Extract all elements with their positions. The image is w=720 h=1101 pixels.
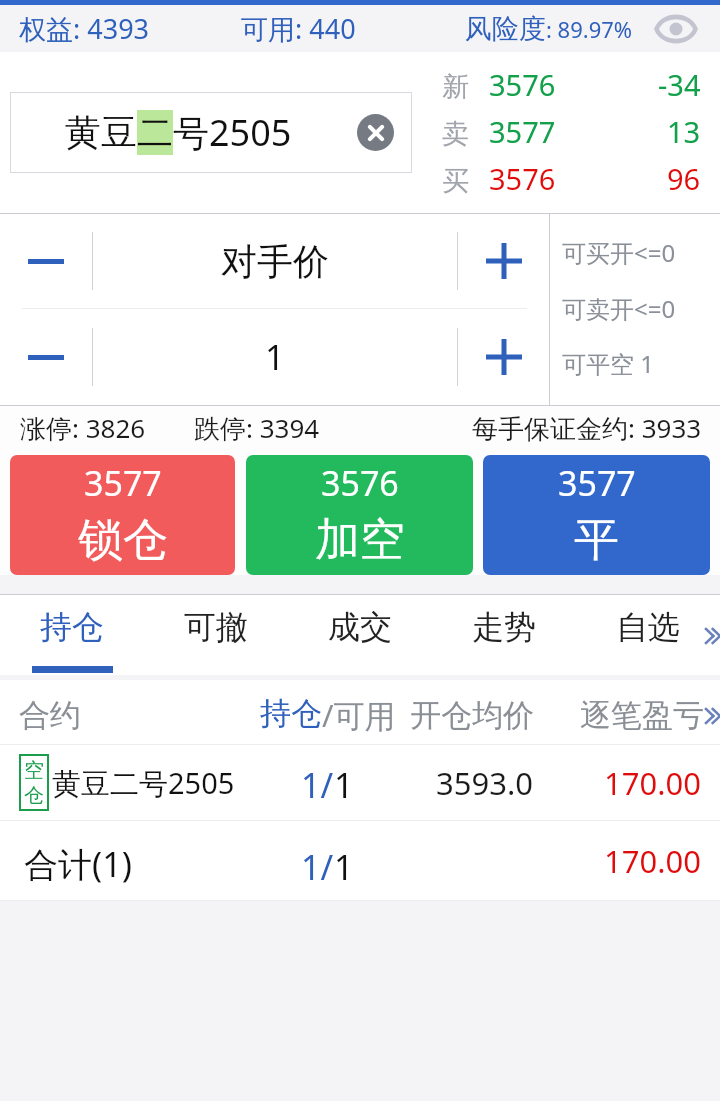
staticText: 可撤 xyxy=(184,607,248,647)
button[interactable]: 可撤 xyxy=(144,595,288,675)
staticText: 对手价 xyxy=(221,239,329,284)
staticText: 买 xyxy=(442,164,469,198)
button[interactable]: 3577 xyxy=(10,455,235,575)
staticText: 黄豆 xyxy=(65,110,137,155)
staticText: 成交 xyxy=(328,607,392,647)
staticText: 自选 xyxy=(616,607,680,647)
staticText: 1/ xyxy=(301,762,334,808)
staticText: 权益: 4393 xyxy=(19,10,150,47)
staticText: : 89.97% xyxy=(546,14,633,44)
button[interactable]: 3577 xyxy=(483,455,710,575)
staticText: -34 xyxy=(658,65,701,104)
staticText: 黄豆二号2505 xyxy=(52,763,235,803)
staticText: 合计(1) xyxy=(24,841,132,887)
staticText: 3576 xyxy=(321,460,399,506)
staticText: 合约 xyxy=(19,696,81,735)
button[interactable]: Toggle balance visibility xyxy=(651,5,701,52)
staticText: 持仓 xyxy=(40,607,104,647)
staticText: 可用: 440 xyxy=(241,10,356,47)
button[interactable]: 持仓 xyxy=(0,595,144,675)
staticText: 风险度 xyxy=(465,12,546,46)
button[interactable]: Decrease xyxy=(0,214,92,308)
staticText: 96 xyxy=(667,159,701,198)
button[interactable]: 黄豆 xyxy=(10,92,412,173)
button[interactable]: Clear text xyxy=(357,114,394,151)
staticText: 可卖开<=0 xyxy=(562,292,676,325)
staticText: 3576 xyxy=(489,65,556,104)
staticText: 1 xyxy=(334,844,354,890)
staticText: 1 xyxy=(334,762,354,808)
staticText: 平 xyxy=(574,512,619,569)
button[interactable]: Increase xyxy=(458,309,549,405)
staticText: 可平空 1 xyxy=(562,347,654,380)
staticText: /可用 xyxy=(322,694,396,736)
staticText: 3577 xyxy=(84,460,162,506)
staticText: 号2505 xyxy=(173,108,292,157)
staticText: 逐笔盈亏 xyxy=(580,696,704,735)
button[interactable]: Decrease xyxy=(0,309,92,405)
button[interactable]: 空 xyxy=(0,745,720,820)
staticText: 170.00 xyxy=(604,840,701,882)
staticText: 空 xyxy=(24,758,44,783)
staticText: 二 xyxy=(137,110,173,155)
staticText: 走势 xyxy=(472,607,536,647)
staticText: 仓 xyxy=(24,783,44,808)
staticText: 1/ xyxy=(301,844,334,890)
button[interactable]: 走势 xyxy=(432,595,576,675)
staticText: 锁仓 xyxy=(78,512,168,569)
button[interactable]: Increase xyxy=(458,214,549,308)
button[interactable]: 自选 xyxy=(576,595,720,675)
button[interactable]: 成交 xyxy=(288,595,432,675)
staticText: 170.00 xyxy=(604,762,701,804)
button[interactable]: More columns xyxy=(706,701,720,731)
staticText: 3576 xyxy=(489,159,556,198)
staticText: 每手保证金约: 3933 xyxy=(472,410,702,446)
staticText: 开仓均价 xyxy=(410,696,534,735)
button[interactable]: More tabs xyxy=(698,616,720,656)
staticText: 13 xyxy=(667,112,701,151)
staticText: 涨停: 3826 xyxy=(20,410,146,446)
staticText: 新 xyxy=(442,70,469,104)
staticText: 持仓 xyxy=(260,694,322,733)
staticText: 卖 xyxy=(442,117,469,151)
staticText: 3577 xyxy=(489,112,556,151)
staticText: 跌停: 3394 xyxy=(194,410,320,446)
button[interactable]: 3576 xyxy=(246,455,473,575)
staticText: 3593.0 xyxy=(436,762,533,804)
staticText: 加空 xyxy=(315,512,405,569)
staticText: 可买开<=0 xyxy=(562,236,676,269)
staticText: 3577 xyxy=(558,460,636,506)
staticText: 1 xyxy=(265,334,285,380)
